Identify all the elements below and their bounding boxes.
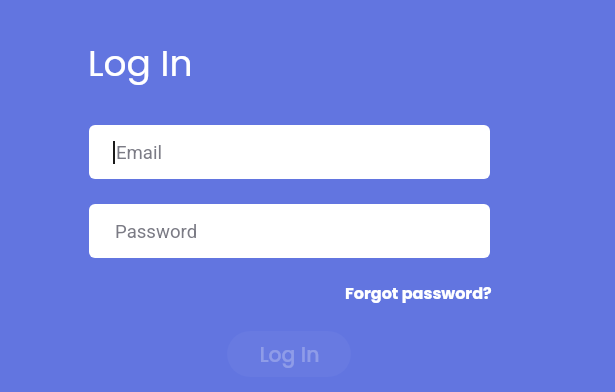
button[interactable]: Forgot password? bbox=[338, 276, 499, 310]
button[interactable]: Log In bbox=[227, 331, 351, 377]
button[interactable]: Password bbox=[89, 204, 490, 258]
staticText: Email bbox=[116, 142, 163, 164]
staticText: Password bbox=[115, 221, 198, 243]
staticText: Forgot password? bbox=[345, 282, 492, 304]
button[interactable]: Email bbox=[89, 125, 490, 179]
staticText: Log In bbox=[259, 340, 320, 369]
staticText: Log In bbox=[88, 38, 193, 88]
